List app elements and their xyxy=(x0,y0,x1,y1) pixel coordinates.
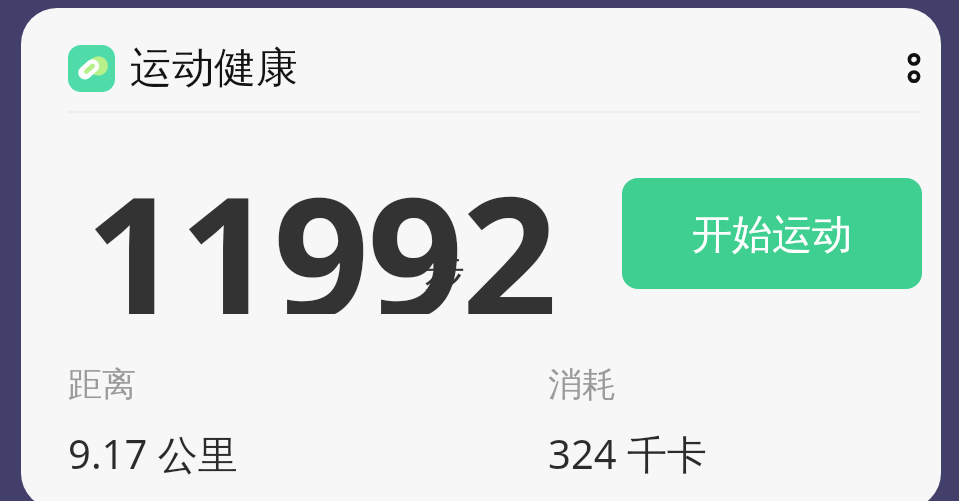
button[interactable]: 开始运动 xyxy=(622,178,922,289)
staticText: 运动健康 xyxy=(130,42,298,95)
staticText: 步 xyxy=(424,247,465,299)
button[interactable]: 消耗 xyxy=(548,363,928,481)
staticText: 11992 xyxy=(85,139,556,314)
staticText: 消耗 xyxy=(548,363,616,406)
button[interactable]: More options xyxy=(886,40,941,96)
button[interactable]: 距离 xyxy=(68,363,548,481)
staticText: 开始运动 xyxy=(692,209,852,259)
staticText: 距离 xyxy=(68,363,136,406)
staticText: 9.17 公里 xyxy=(68,426,238,481)
staticText: 324 千卡 xyxy=(548,426,708,481)
